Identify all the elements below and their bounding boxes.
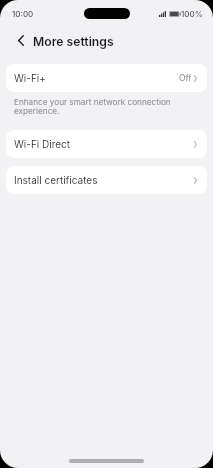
staticText: More settings xyxy=(33,34,114,49)
staticText: 100% xyxy=(181,9,203,19)
button[interactable]: Wi-Fi Direct xyxy=(6,130,207,158)
staticText: 10:00 xyxy=(12,9,34,19)
button[interactable]: Install certificates xyxy=(6,166,207,194)
staticText: Wi-Fi Direct xyxy=(14,138,71,150)
button[interactable]: Back xyxy=(12,31,30,49)
staticText: Off xyxy=(179,73,192,83)
button[interactable]: Wi-Fi+ xyxy=(6,64,207,92)
staticText: Wi-Fi+ xyxy=(14,72,46,84)
staticText: Enhance your smart network connection ex… xyxy=(14,97,183,116)
staticText: Install certificates xyxy=(14,174,98,186)
